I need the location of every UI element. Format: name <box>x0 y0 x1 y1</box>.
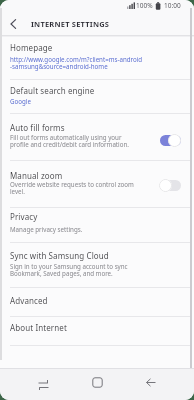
staticText: Sign in to your Samsung account to sync … <box>10 262 128 278</box>
staticText: Default search engine <box>10 85 95 96</box>
staticText: 10:00 <box>164 1 181 10</box>
button[interactable] <box>0 161 194 207</box>
staticText: Advanced <box>10 295 48 306</box>
button[interactable] <box>0 288 194 316</box>
button[interactable] <box>0 37 194 79</box>
staticText: 100% <box>136 1 153 10</box>
button[interactable] <box>92 377 103 388</box>
staticText: Override website requests to control zoo… <box>10 180 134 196</box>
button[interactable] <box>0 208 194 242</box>
staticText: About Internet <box>10 322 67 333</box>
staticText: Homepage <box>10 42 53 53</box>
button[interactable]: INTERNET SETTINGS <box>31 19 110 29</box>
button[interactable] <box>0 317 194 345</box>
button[interactable] <box>37 376 51 390</box>
staticText: Fill out forms automatically using your … <box>10 133 129 149</box>
staticText: Privacy <box>10 211 38 222</box>
staticText: Google <box>10 97 31 105</box>
staticText: Manage privacy settings. <box>10 225 83 233</box>
staticText: Auto fill forms <box>10 122 65 133</box>
button[interactable] <box>0 243 194 287</box>
staticText: Manual zoom <box>10 170 63 181</box>
button[interactable] <box>0 80 194 113</box>
staticText: http://www.google.com/m?client=ms-androi… <box>10 55 143 71</box>
button[interactable] <box>145 377 157 389</box>
staticText: Sync with Samsung Cloud <box>10 250 109 261</box>
button[interactable] <box>0 114 194 160</box>
